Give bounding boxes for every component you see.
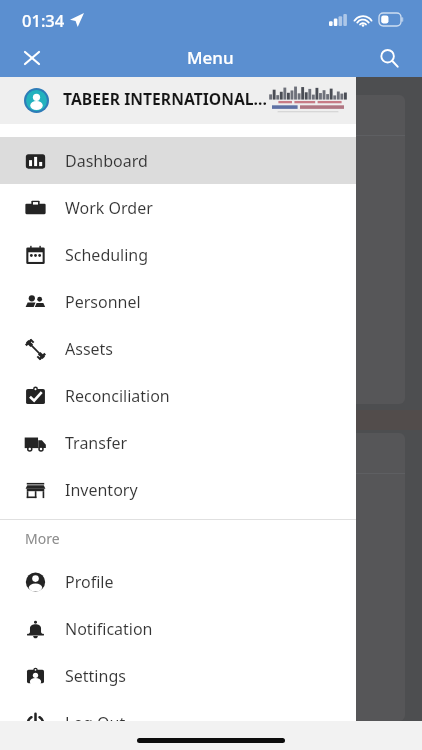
staticText: Profile xyxy=(65,571,114,593)
staticText: TABEER INTERNATIONAL... xyxy=(63,88,267,109)
staticText: Inventory xyxy=(65,479,138,501)
button[interactable]: Log Out xyxy=(0,699,356,746)
button[interactable]: Settings xyxy=(0,652,356,699)
staticText: Scheduling xyxy=(65,244,149,266)
button[interactable]: Inventory xyxy=(0,466,356,513)
staticText: More xyxy=(25,529,60,548)
staticText: 01:34 xyxy=(22,9,65,31)
button[interactable]: Close menu xyxy=(13,39,51,77)
staticText: Notification xyxy=(65,618,153,640)
button[interactable]: Assets xyxy=(0,325,356,372)
staticText: Log Out xyxy=(65,712,126,734)
button[interactable]: Profile xyxy=(0,558,356,605)
staticText: Transfer xyxy=(65,432,128,454)
staticText: Settings xyxy=(65,665,126,687)
button[interactable]: TABEER INTERNATIONAL... xyxy=(0,77,356,124)
button[interactable]: Search xyxy=(370,39,408,77)
staticText: Personnel xyxy=(65,291,141,313)
staticText: Work Order xyxy=(65,197,153,219)
staticText: Assets xyxy=(65,338,114,360)
button[interactable]: Notification xyxy=(0,605,356,652)
button[interactable]: Transfer xyxy=(0,419,356,466)
staticText: Dashboard xyxy=(65,150,148,172)
button[interactable]: Dashboard xyxy=(0,137,356,184)
button[interactable]: Reconciliation xyxy=(0,372,356,419)
staticText: Reconciliation xyxy=(65,385,170,407)
button[interactable]: Scheduling xyxy=(0,231,356,278)
button[interactable]: Work Order xyxy=(0,184,356,231)
staticText: Menu xyxy=(187,46,234,69)
button[interactable]: Personnel xyxy=(0,278,356,325)
